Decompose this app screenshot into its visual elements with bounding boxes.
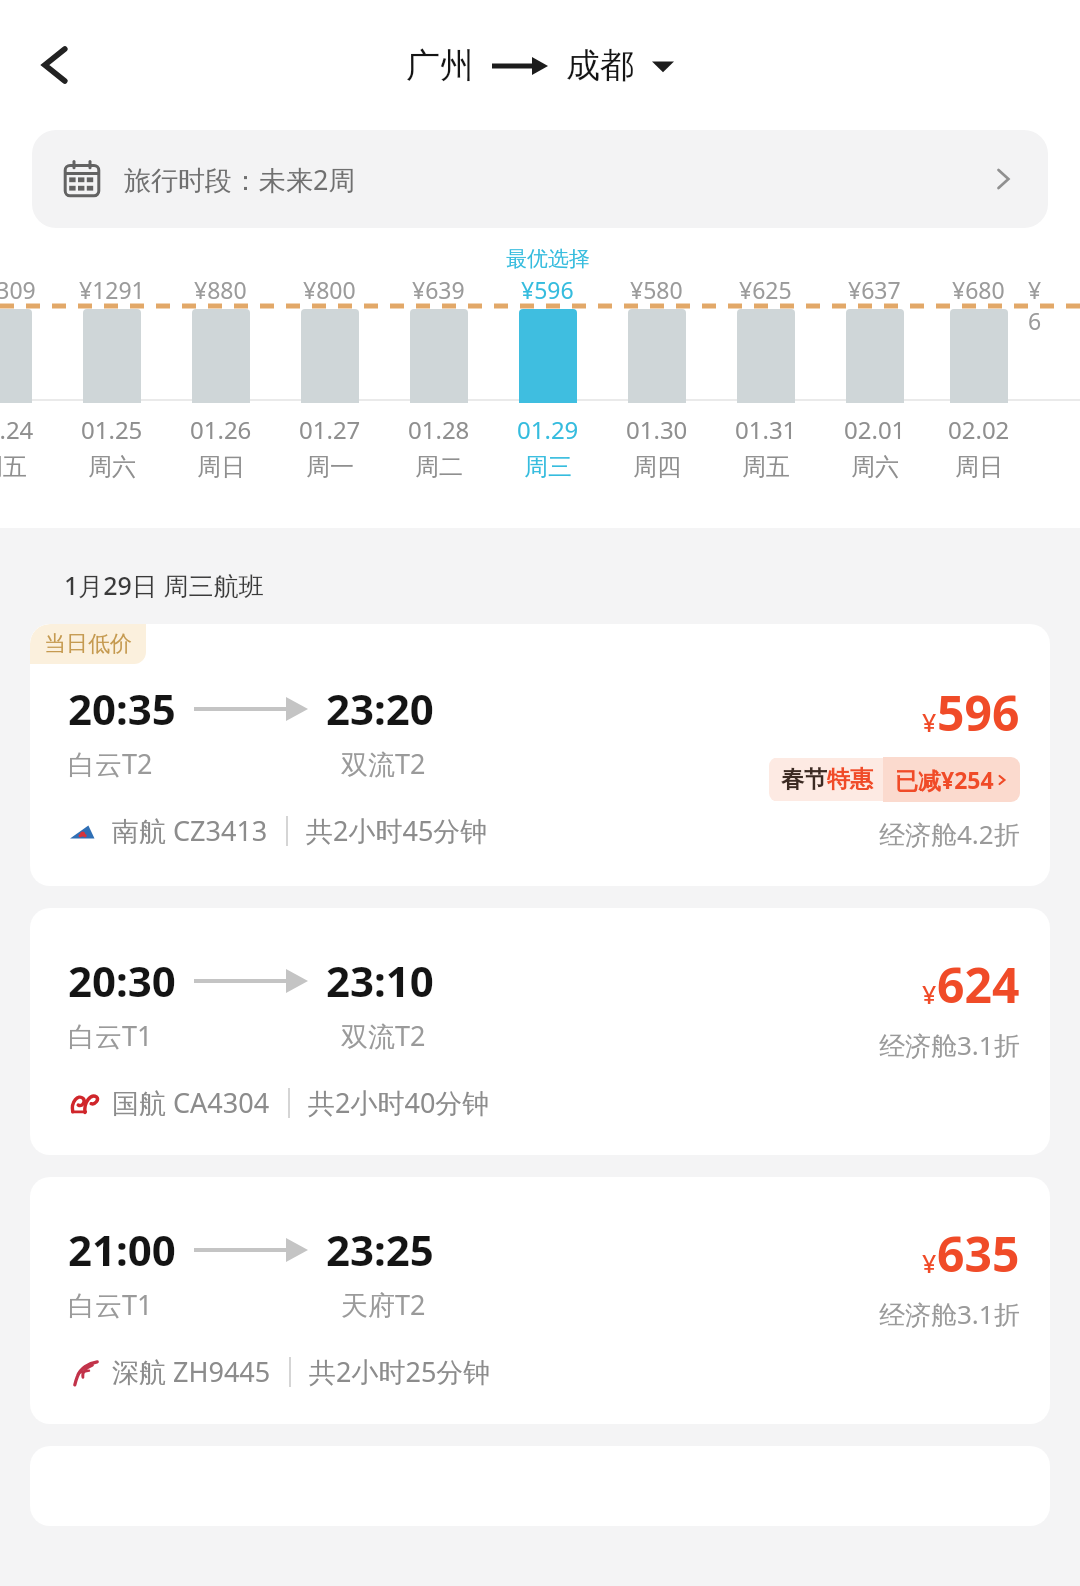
button[interactable]: 21:00 [30,1177,1050,1424]
staticText: 国航 CA4304 [112,1084,270,1121]
staticText: 624 [937,952,1020,1017]
staticText: 20:35 [68,680,176,737]
staticText: 周六 [851,452,899,482]
button[interactable]: ¥880 [166,228,275,528]
button[interactable]: 最优选择 [493,228,602,528]
staticText: 当日低价 [44,630,132,658]
staticText: 周三 [524,452,572,482]
staticText: 双流T2 [341,745,426,782]
staticText: 1月29日 周三航班 [64,568,264,602]
button[interactable]: ¥637 [820,228,929,528]
staticText: ¥625 [739,274,792,305]
staticText: 01.24 [0,413,34,446]
staticText: 共2小时40分钟 [308,1084,490,1121]
staticText: 02.02 [948,413,1010,446]
button[interactable]: 旅行时段：未来2周 [32,130,1048,228]
staticText: 23:10 [326,952,434,1009]
staticText: 周五 [742,452,790,482]
staticText: 23:20 [326,680,434,737]
staticText: 天府T2 [341,1286,426,1323]
button[interactable]: 春节 [769,757,1020,802]
staticText: 特惠 [827,765,873,794]
button[interactable]: ¥1291 [57,228,166,528]
staticText: ¥1309 [0,274,36,305]
staticText: 周二 [415,452,463,482]
staticText: 01.28 [408,413,470,446]
staticText: 01.27 [299,413,361,446]
staticText: ¥1291 [79,274,145,305]
staticText: ¥580 [630,274,683,305]
staticText: 01.30 [626,413,688,446]
staticText: ¥639 [412,274,465,305]
staticText: 经济舱4.2折 [879,816,1020,852]
staticText: 共2小时25分钟 [309,1353,491,1390]
staticText: 最优选择 [506,246,590,272]
staticText: 周五 [0,452,27,482]
staticText: ¥ [922,1246,937,1280]
staticText: 成都 [566,44,634,87]
staticText: 周日 [197,452,245,482]
staticText: ¥637 [848,274,901,305]
button[interactable]: ¥639 [384,228,493,528]
staticText: ¥800 [303,274,356,305]
staticText: 23:25 [326,1221,434,1278]
staticText: 已减¥254 [895,764,994,795]
staticText: 双流T2 [341,1017,426,1054]
staticText: 01.29 [517,413,579,446]
staticText: 周一 [306,452,354,482]
button[interactable]: ¥625 [711,228,820,528]
staticText: ¥880 [194,274,247,305]
staticText: 20:30 [68,952,176,1009]
staticText: 21:00 [68,1221,176,1278]
staticText: 周四 [633,452,681,482]
staticText: ¥ [922,977,937,1011]
button[interactable]: ¥800 [275,228,384,528]
staticText: ¥596 [521,274,574,305]
staticText: 深航 ZH9445 [112,1353,271,1390]
button[interactable]: 20:30 [30,908,1050,1155]
staticText: 春节 [781,765,827,794]
button[interactable]: 广州 [406,44,674,87]
staticText: 596 [937,680,1020,745]
staticText: 白云T1 [68,1286,153,1323]
staticText: 周六 [88,452,136,482]
staticText: 周日 [955,452,1003,482]
staticText: 635 [937,1221,1020,1286]
button[interactable]: 当日低价 [30,624,1050,886]
staticText: 01.26 [190,413,252,446]
staticText: 经济舱3.1折 [879,1296,1020,1332]
staticText: 01.31 [735,413,797,446]
staticText: 白云T2 [68,745,153,782]
button[interactable]: ¥1309 [0,228,57,528]
button[interactable]: ¥580 [602,228,711,528]
staticText: 广州 [406,44,474,87]
staticText: 共2小时45分钟 [306,812,488,849]
staticText: 02.01 [844,413,906,446]
staticText: 南航 CZ3413 [112,812,268,849]
button[interactable]: Back [20,29,92,101]
staticText: 经济舱3.1折 [879,1027,1020,1063]
button[interactable]: ¥680 [929,228,1028,528]
staticText: 01.25 [81,413,143,446]
staticText: ¥680 [952,274,1005,305]
staticText: 旅行时段：未来2周 [124,161,356,198]
staticText: 白云T1 [68,1017,153,1054]
staticText: ¥ [922,705,937,739]
